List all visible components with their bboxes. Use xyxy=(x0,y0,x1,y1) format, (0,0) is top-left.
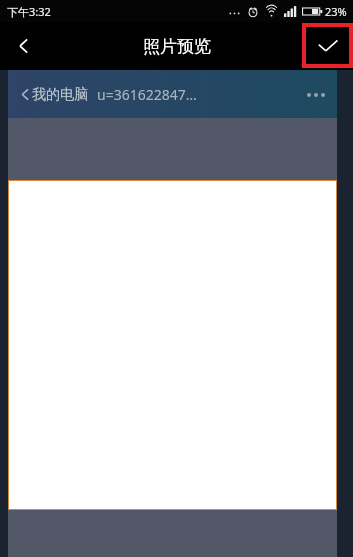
button[interactable]: More options xyxy=(307,93,325,97)
button[interactable]: Back xyxy=(0,22,48,70)
staticText: 照片预览 xyxy=(143,36,211,57)
staticText: 23% xyxy=(325,4,347,19)
button[interactable]: 我的电脑 xyxy=(8,70,337,118)
staticText: u=3616228473,... xyxy=(97,85,202,104)
button[interactable]: Confirm xyxy=(302,23,353,68)
staticText: 我的电脑 xyxy=(32,86,88,104)
staticText: 下午3:32 xyxy=(7,4,51,19)
